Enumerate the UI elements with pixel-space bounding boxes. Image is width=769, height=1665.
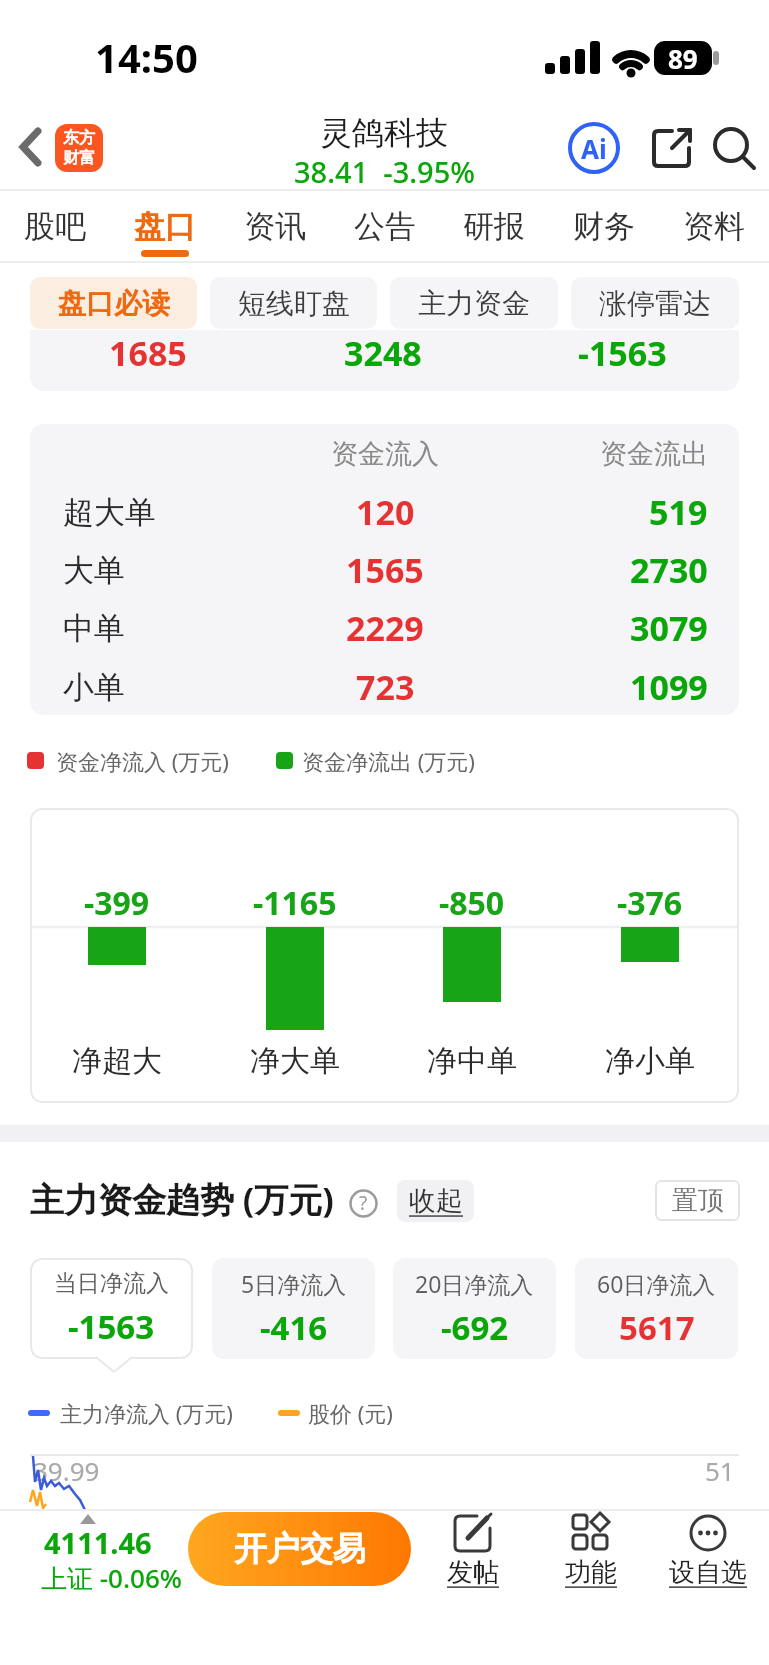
- staticText: 主力资金趋势 (万元): [30, 1176, 334, 1222]
- button[interactable]: 置顶: [655, 1180, 740, 1221]
- staticText: 盘口必读: [58, 286, 170, 321]
- button[interactable]: 4111.46: [10, 1517, 190, 1601]
- staticText: 资金净流入 (万元): [56, 746, 229, 776]
- button[interactable]: 涨停雷达: [571, 277, 739, 329]
- staticText: 公告: [354, 207, 416, 246]
- staticText: 资讯: [244, 207, 306, 246]
- staticText: 14:50: [95, 30, 198, 84]
- staticText: 60日净流入: [597, 1268, 716, 1299]
- button[interactable]: 公告: [354, 207, 416, 246]
- staticText: 1685: [109, 330, 187, 376]
- staticText: -1563: [578, 330, 667, 376]
- staticText: 灵鸽科技: [320, 113, 448, 153]
- staticText: 20日净流入: [415, 1268, 534, 1299]
- staticText: -416: [260, 1305, 328, 1350]
- staticText: 1099: [630, 664, 708, 710]
- staticText: 资金净流出 (万元): [302, 746, 475, 776]
- button[interactable]: [650, 126, 694, 170]
- button[interactable]: 财务: [573, 207, 635, 246]
- staticText: 2730: [630, 547, 708, 593]
- button[interactable]: 盘口: [134, 207, 196, 246]
- staticText: 净超大: [72, 1042, 162, 1080]
- staticText: 收起: [409, 1184, 463, 1218]
- staticText: 净中单: [427, 1042, 517, 1080]
- staticText: 51: [705, 1453, 735, 1488]
- staticText: 研报: [463, 207, 525, 246]
- staticText: 功能: [565, 1556, 617, 1589]
- staticText: 股价 (元): [308, 1398, 393, 1428]
- staticText: 89: [668, 41, 698, 75]
- staticText: -399: [84, 881, 150, 925]
- staticText: 东方: [63, 128, 95, 148]
- staticText: 120: [356, 489, 415, 535]
- staticText: 主力净流入 (万元): [60, 1398, 233, 1428]
- button[interactable]: 当日净流入: [30, 1258, 193, 1359]
- staticText: 1565: [346, 547, 424, 593]
- staticText: 股吧: [24, 207, 86, 246]
- staticText: 当日净流入: [54, 1269, 169, 1298]
- staticText: 开户交易: [234, 1528, 366, 1570]
- staticText: 盘口: [134, 207, 196, 246]
- button[interactable]: 收起: [397, 1180, 474, 1222]
- staticText: ?: [359, 1190, 368, 1216]
- staticText: -1563: [68, 1304, 155, 1349]
- staticText: 短线盯盘: [238, 286, 350, 321]
- staticText: 5日净流入: [241, 1268, 347, 1299]
- button[interactable]: 资讯: [244, 207, 306, 246]
- staticText: 资金流入: [331, 437, 439, 471]
- staticText: -1165: [253, 881, 337, 925]
- staticText: 净大单: [250, 1042, 340, 1080]
- button[interactable]: 设自选: [656, 1509, 760, 1599]
- staticText: 2229: [346, 605, 424, 651]
- staticText: 中单: [63, 609, 125, 648]
- button[interactable]: 发帖: [443, 1509, 503, 1599]
- button[interactable]: 研报: [463, 207, 525, 246]
- button[interactable]: 股吧: [24, 207, 86, 246]
- staticText: Ai: [581, 131, 607, 166]
- staticText: 519: [649, 489, 708, 535]
- staticText: 38.41 -3.95%: [294, 152, 475, 191]
- button[interactable]: 东方: [55, 124, 103, 172]
- button[interactable]: [20, 128, 42, 166]
- staticText: 大单: [63, 551, 125, 590]
- staticText: 资料: [683, 207, 745, 246]
- staticText: 5617: [619, 1305, 695, 1350]
- staticText: -376: [617, 881, 683, 925]
- staticText: -850: [439, 881, 505, 925]
- staticText: 资金流出: [600, 437, 708, 471]
- staticText: 涨停雷达: [599, 286, 711, 321]
- staticText: 主力资金: [418, 286, 530, 321]
- staticText: 4111.46: [44, 1523, 152, 1562]
- staticText: 净小单: [605, 1042, 695, 1080]
- button[interactable]: [712, 126, 756, 170]
- staticText: 723: [356, 664, 415, 710]
- staticText: 发帖: [447, 1556, 499, 1589]
- button[interactable]: 20日净流入: [393, 1258, 556, 1359]
- staticText: -692: [441, 1305, 509, 1350]
- button[interactable]: 开户交易: [188, 1512, 411, 1586]
- staticText: 39.99: [33, 1453, 100, 1488]
- staticText: 超大单: [63, 493, 156, 532]
- button[interactable]: 60日净流入: [575, 1258, 738, 1359]
- button[interactable]: 资料: [683, 207, 745, 246]
- staticText: 3079: [630, 605, 708, 651]
- staticText: 3248: [344, 330, 422, 376]
- button[interactable]: 5日净流入: [212, 1258, 375, 1359]
- staticText: 上证 -0.06%: [41, 1560, 182, 1596]
- staticText: 设自选: [669, 1556, 747, 1589]
- staticText: 置顶: [672, 1184, 724, 1217]
- button[interactable]: 短线盯盘: [210, 277, 377, 329]
- staticText: 小单: [63, 668, 125, 707]
- button[interactable]: 主力资金: [390, 277, 558, 329]
- button[interactable]: Ai: [568, 122, 620, 174]
- staticText: 财富: [63, 148, 95, 168]
- button[interactable]: 盘口必读: [30, 277, 197, 329]
- button[interactable]: 功能: [561, 1509, 621, 1599]
- staticText: 财务: [573, 207, 635, 246]
